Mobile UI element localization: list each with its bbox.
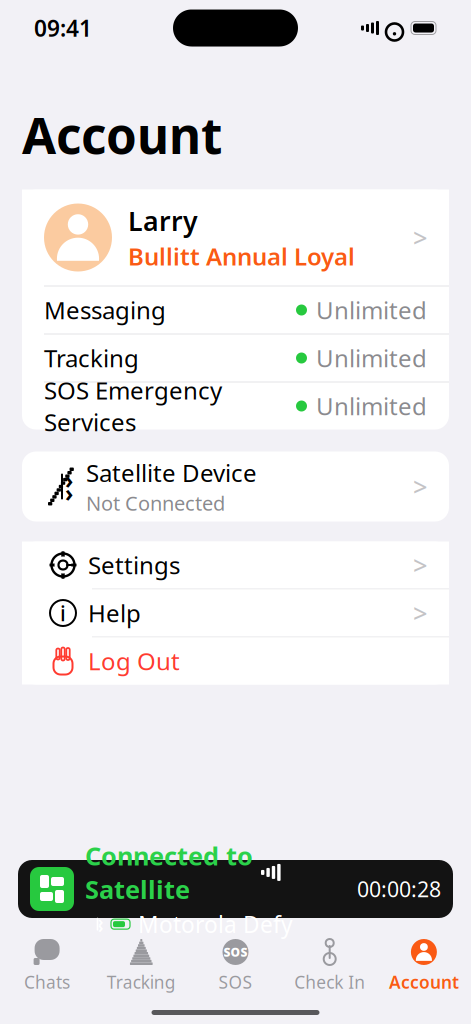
staticText: › <box>65 465 73 495</box>
button[interactable]: Connected to Satellite <box>18 860 453 918</box>
staticText: SOS <box>223 944 247 960</box>
staticText: › <box>65 478 73 508</box>
staticText: > <box>413 470 427 503</box>
button[interactable]: Tracking <box>94 940 188 992</box>
staticText: Check In <box>294 970 365 993</box>
staticText: Connected to Satellite <box>85 839 253 906</box>
button[interactable]: Settings <box>22 541 449 588</box>
staticText: Account <box>389 970 459 993</box>
button[interactable]: Chats <box>0 940 94 992</box>
staticText: 00:00:28 <box>357 875 441 903</box>
staticText: Log Out <box>88 645 180 677</box>
staticText: Motorola Defy <box>138 909 293 939</box>
staticText: Chats <box>24 970 70 993</box>
staticText: SOS <box>218 970 252 993</box>
staticText: Tracking <box>107 970 176 993</box>
staticText: > <box>413 548 427 582</box>
staticText: Larry <box>128 203 198 238</box>
button[interactable]: Check In <box>283 940 377 992</box>
button[interactable]: Log Out <box>22 637 449 684</box>
staticText: › <box>98 917 103 937</box>
staticText: Help <box>88 597 141 629</box>
staticText: Unlimited <box>316 390 427 422</box>
button[interactable]: i <box>22 589 449 636</box>
staticText: 09:41 <box>34 13 92 43</box>
staticText: Unlimited <box>316 342 427 374</box>
staticText: Unlimited <box>316 294 427 326</box>
button[interactable]: Larry <box>22 189 449 285</box>
staticText: Settings <box>88 549 180 581</box>
staticText: Not Connected <box>86 490 225 516</box>
button[interactable]: Б <box>22 451 449 521</box>
staticText: › <box>98 911 103 931</box>
staticText: > <box>413 596 427 630</box>
staticText: Tracking <box>44 342 139 374</box>
staticText: Satellite Device <box>86 457 257 489</box>
staticText: Messaging <box>44 294 166 326</box>
button[interactable]: Account <box>377 940 471 992</box>
staticText: Bullitt Annual Loyal <box>128 240 355 272</box>
staticText: > <box>413 221 427 254</box>
button[interactable]: SOS <box>188 940 283 992</box>
staticText: i <box>60 599 66 627</box>
staticText: SOS Emergency Services <box>44 374 222 438</box>
staticText: Account <box>22 102 222 167</box>
